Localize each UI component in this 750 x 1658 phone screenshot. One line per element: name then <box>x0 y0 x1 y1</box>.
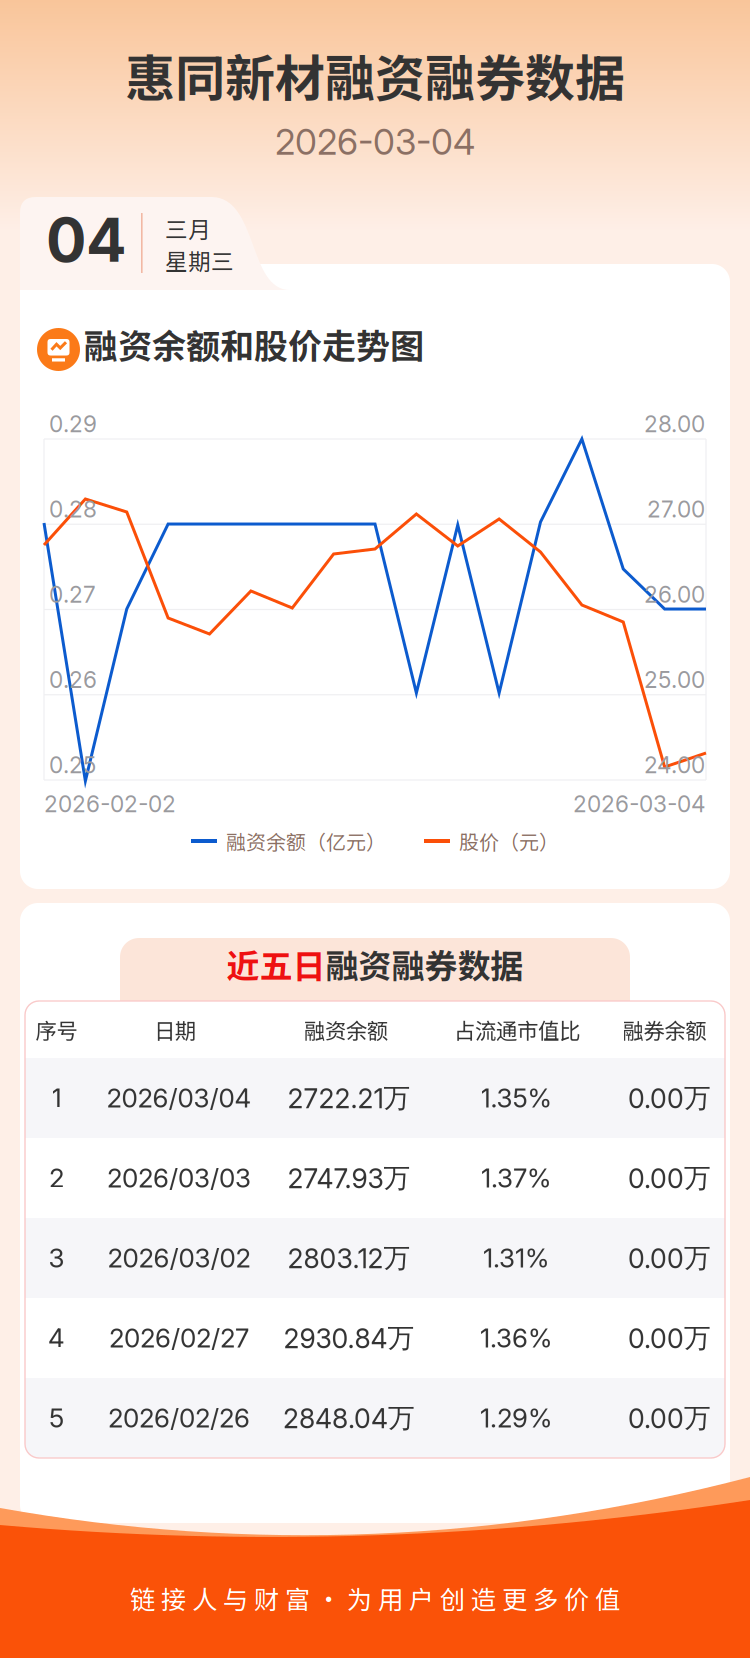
staticText: 0.25 <box>49 751 96 779</box>
staticText: 链 接 人 与 财 富 · 为 用 户 创 造 更 多 价 值 <box>130 1580 620 1616</box>
staticText: 0.00万 <box>628 1081 711 1115</box>
staticText: 融资融券数据 <box>325 940 523 988</box>
staticText: 24.00 <box>644 751 705 779</box>
staticText: 2026/03/03 <box>107 1162 251 1194</box>
staticText: 三月 <box>165 212 211 244</box>
staticText: 2026/02/26 <box>108 1402 250 1434</box>
staticText: 5 <box>49 1402 64 1434</box>
staticText: 星期三 <box>165 244 234 276</box>
staticText: 2747.93万 <box>287 1161 410 1195</box>
staticText: 2930.84万 <box>283 1321 414 1355</box>
staticText: 序号 <box>35 1014 77 1045</box>
staticText: 0.28 <box>49 495 97 523</box>
staticText: 融券余额 <box>622 1014 706 1045</box>
staticText: 1.35% <box>480 1082 551 1114</box>
staticText: 0.00万 <box>628 1241 711 1275</box>
staticText: 27.00 <box>647 495 705 523</box>
staticText: 0.00万 <box>628 1321 711 1355</box>
staticText: 1.29% <box>480 1402 552 1434</box>
staticText: 1.37% <box>481 1162 551 1194</box>
staticText: 占流通市值比 <box>454 1014 580 1045</box>
staticText: 2026/02/27 <box>109 1322 249 1354</box>
staticText: 1 <box>51 1082 61 1114</box>
staticText: 2722.21万 <box>287 1081 410 1115</box>
staticText: 2026-03-04 <box>275 121 475 163</box>
staticText: 近五日 <box>226 940 325 988</box>
staticText: 0.00万 <box>628 1161 711 1195</box>
staticText: 1.36% <box>480 1322 552 1354</box>
staticText: 融资余额 <box>304 1014 388 1045</box>
staticText: 2 <box>49 1162 64 1194</box>
staticText: 股价（元） <box>459 826 559 855</box>
staticText: 2026/03/02 <box>107 1242 250 1274</box>
staticText: 2803.12万 <box>287 1241 410 1275</box>
staticText: 04 <box>46 204 127 276</box>
staticText: 融资余额（亿元） <box>226 826 386 855</box>
staticText: 28.00 <box>644 410 705 438</box>
staticText: 日期 <box>154 1014 196 1045</box>
staticText: 2026-03-04 <box>573 790 706 818</box>
staticText: 0.26 <box>49 666 97 693</box>
staticText: 26.00 <box>644 581 705 608</box>
staticText: 1.31% <box>483 1242 549 1274</box>
staticText: 2026-02-02 <box>44 790 176 818</box>
staticText: 4 <box>48 1322 65 1354</box>
staticText: 3 <box>48 1242 64 1274</box>
staticText: 融资余额和股价走势图 <box>84 319 424 369</box>
staticText: 惠同新材融资融券数据 <box>125 39 625 111</box>
staticText: 2026/03/04 <box>106 1082 251 1114</box>
staticText: 0.27 <box>49 581 96 608</box>
staticText: 2848.04万 <box>283 1401 415 1435</box>
staticText: 25.00 <box>644 666 705 693</box>
staticText: 0.29 <box>49 410 97 438</box>
staticText: 0.00万 <box>628 1401 711 1435</box>
